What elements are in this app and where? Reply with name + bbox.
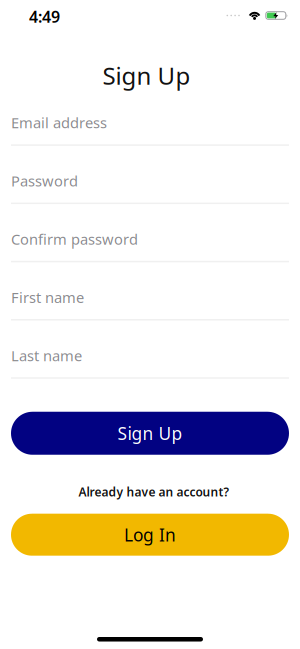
staticText: Password xyxy=(11,171,78,191)
button[interactable]: Confirm password xyxy=(11,229,289,262)
staticText: Email address xyxy=(11,113,107,132)
staticText: Sign Up xyxy=(102,59,190,91)
button[interactable]: First name xyxy=(11,288,289,321)
button[interactable]: Log In xyxy=(11,514,289,556)
staticText: Already have an account? xyxy=(78,484,229,500)
staticText: Sign Up xyxy=(117,422,182,445)
button[interactable]: Password xyxy=(11,171,289,204)
staticText: First name xyxy=(11,288,84,307)
staticText: Last name xyxy=(11,346,82,365)
button[interactable]: Email address xyxy=(11,113,289,146)
staticText: 4:49 xyxy=(29,6,60,27)
staticText: Confirm password xyxy=(11,229,138,249)
button[interactable]: Sign Up xyxy=(11,412,289,455)
staticText: Log In xyxy=(124,523,176,546)
button[interactable]: Last name xyxy=(11,346,289,379)
